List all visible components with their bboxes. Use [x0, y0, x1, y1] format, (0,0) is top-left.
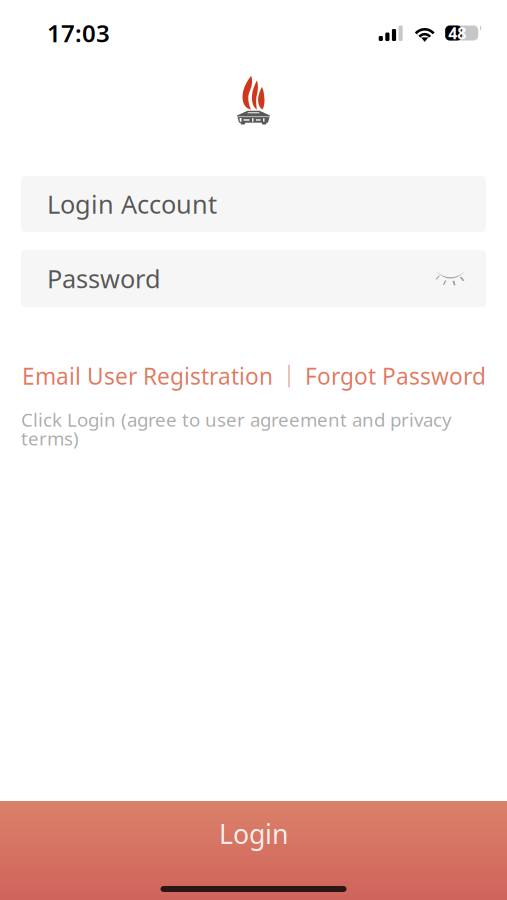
staticText: Email User Registration: [22, 361, 273, 391]
button[interactable]: Forgot Password: [305, 361, 486, 391]
staticText: Click Login (agree to user agreement and…: [21, 407, 452, 432]
staticText: Login: [219, 816, 288, 851]
button[interactable]: Password: [21, 250, 424, 307]
staticText: Password: [47, 262, 161, 295]
button[interactable]: Show password: [424, 256, 478, 300]
staticText: 17:03: [47, 17, 110, 49]
button[interactable]: Email User Registration: [22, 361, 273, 391]
button[interactable]: Login Account: [21, 176, 486, 232]
staticText: Login Account: [47, 187, 217, 221]
staticText: 48: [448, 22, 466, 44]
staticText: terms): [21, 426, 79, 451]
button[interactable]: Login: [0, 801, 507, 900]
staticText: Forgot Password: [305, 361, 486, 391]
